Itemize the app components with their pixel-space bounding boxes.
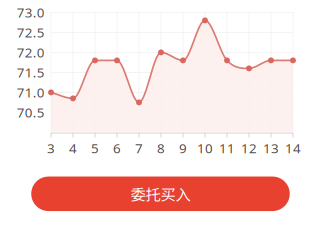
- staticText: 8: [157, 139, 165, 157]
- staticText: 4: [69, 139, 77, 157]
- staticText: 委托买入: [130, 183, 190, 205]
- staticText: 9: [179, 139, 187, 157]
- staticText: 14: [285, 139, 301, 157]
- staticText: 5: [91, 139, 99, 157]
- staticText: 71.0: [17, 83, 45, 101]
- staticText: 71.5: [17, 63, 45, 81]
- staticText: 72.5: [17, 23, 45, 41]
- staticText: 13: [263, 139, 279, 157]
- staticText: 3: [47, 139, 55, 157]
- staticText: 7: [135, 139, 143, 157]
- staticText: 72.0: [17, 43, 45, 61]
- staticText: 11: [219, 139, 235, 157]
- button[interactable]: 委托买入: [31, 177, 290, 211]
- staticText: 10: [197, 139, 213, 157]
- staticText: 70.5: [17, 103, 45, 121]
- staticText: 12: [241, 139, 257, 157]
- staticText: 73.0: [17, 3, 45, 21]
- staticText: 6: [113, 139, 121, 157]
